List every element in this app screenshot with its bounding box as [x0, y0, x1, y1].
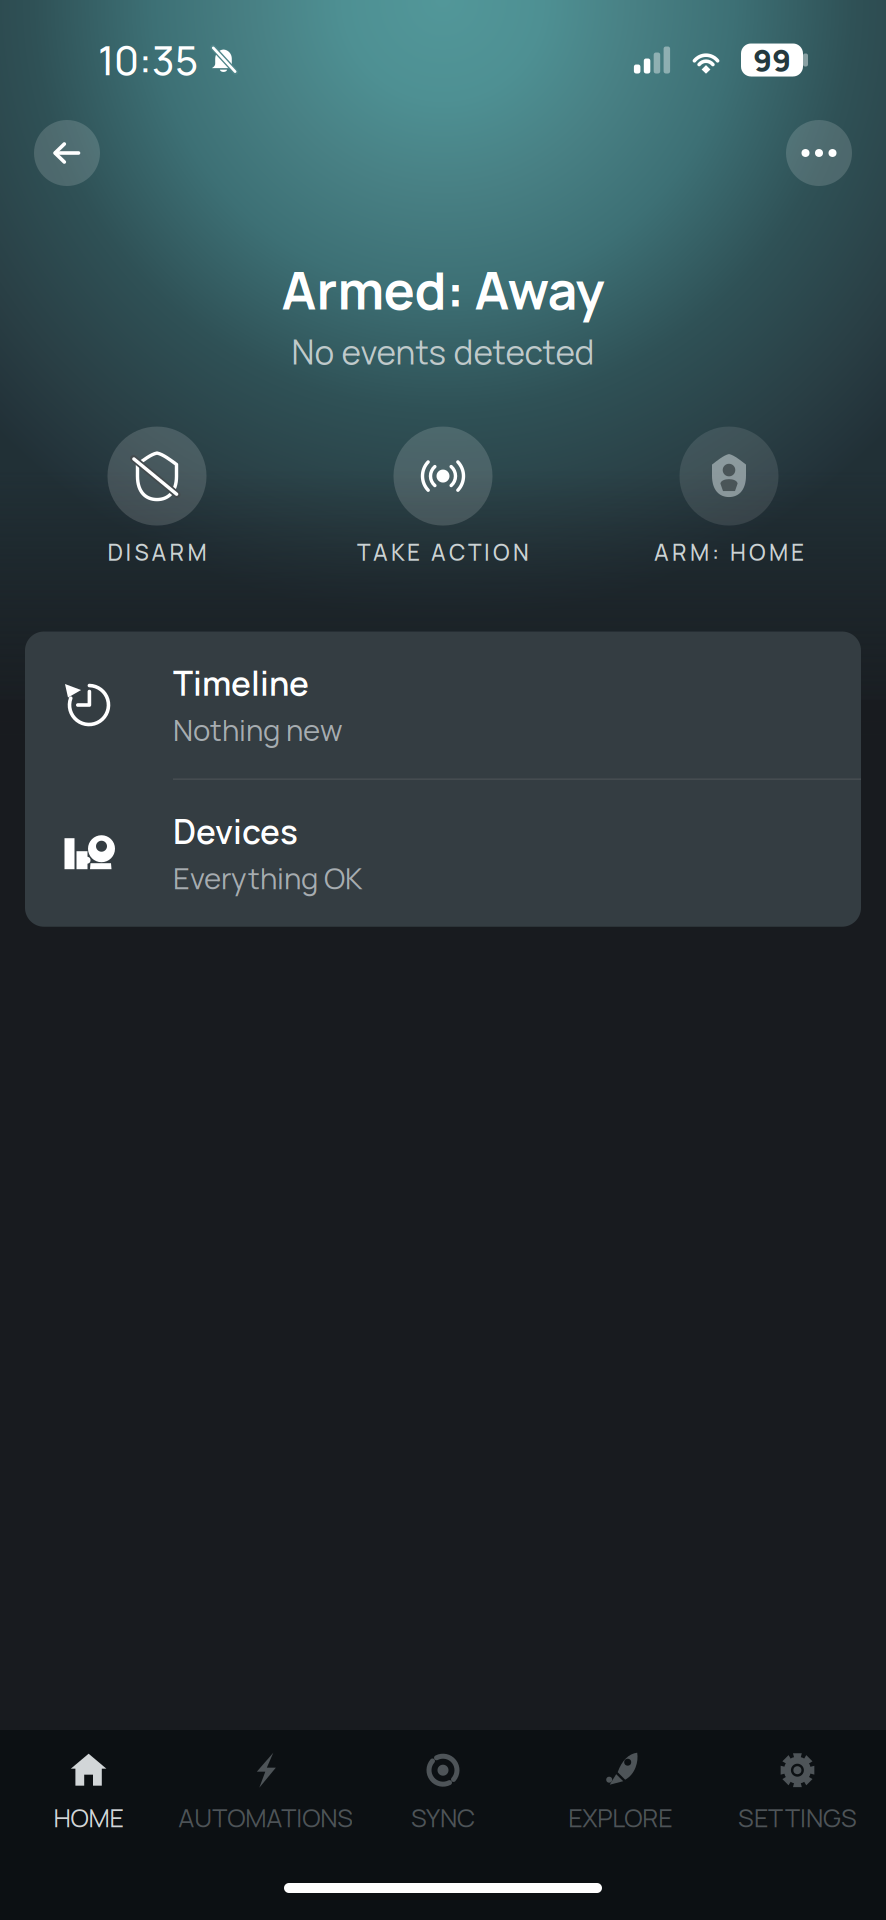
button[interactable]: More options: [786, 120, 852, 186]
staticText: Nothing new: [173, 710, 343, 750]
staticText: AUTOMATIONS: [178, 1800, 353, 1835]
button[interactable]: Back: [34, 120, 100, 186]
button[interactable]: SETTINGS: [709, 1751, 886, 1835]
staticText: SETTINGS: [738, 1800, 857, 1835]
staticText: A R M : H O M E: [654, 537, 804, 568]
staticText: T A K E A C T I O N: [357, 537, 529, 568]
staticText: 99: [753, 39, 791, 81]
button[interactable]: AUTOMATIONS: [177, 1751, 354, 1835]
staticText: Armed: Away: [281, 254, 604, 325]
staticText: HOME: [54, 1800, 124, 1835]
staticText: Devices: [173, 808, 298, 854]
staticText: No events detected: [291, 329, 594, 374]
staticText: D I S A R M: [107, 537, 206, 568]
staticText: Everything OK: [173, 858, 362, 898]
staticText: SYNC: [411, 1800, 475, 1835]
staticText: 10:35: [98, 33, 198, 87]
button[interactable]: EXPLORE: [532, 1751, 709, 1835]
staticText: EXPLORE: [568, 1800, 672, 1835]
button[interactable]: D I S A R M: [14, 427, 300, 568]
button[interactable]: Timeline: [25, 631, 861, 778]
button[interactable]: SYNC: [354, 1751, 532, 1835]
button[interactable]: HOME: [0, 1751, 177, 1835]
button[interactable]: A R M : H O M E: [586, 427, 872, 568]
button[interactable]: Devices: [25, 780, 861, 927]
button[interactable]: T A K E A C T I O N: [300, 427, 586, 568]
staticText: Timeline: [173, 660, 309, 706]
